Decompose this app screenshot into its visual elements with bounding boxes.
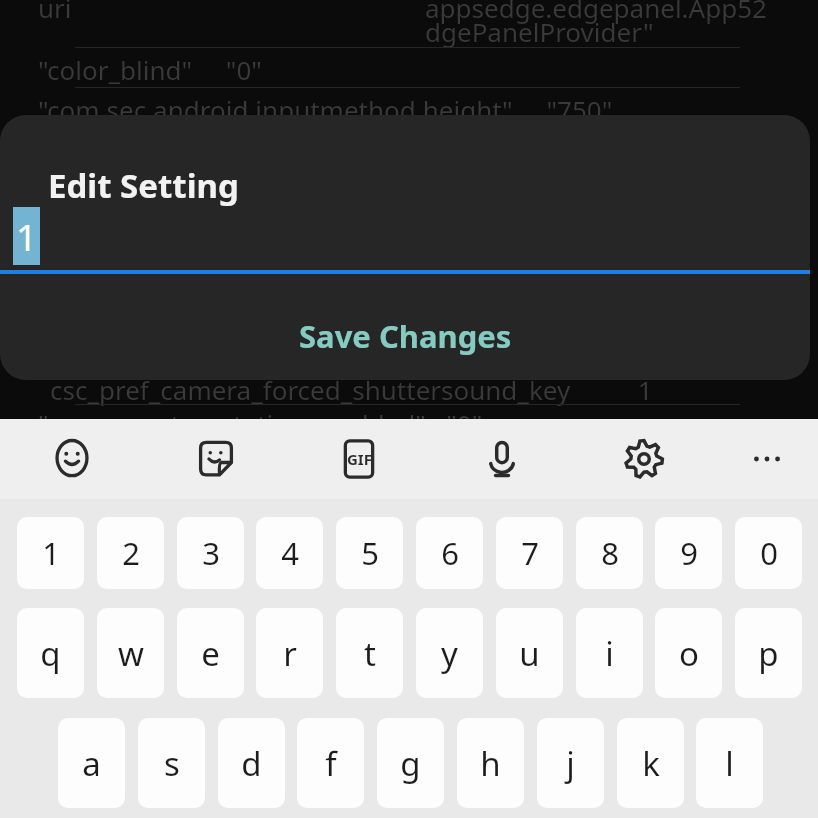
staticText: uri [38, 0, 72, 25]
staticText: appsedge.edgepanel.App52 [425, 0, 767, 25]
button[interactable]: Emoji [38, 427, 106, 491]
staticText: s [164, 741, 180, 786]
button[interactable]: Keyboard settings [610, 427, 678, 491]
staticText: h [480, 741, 501, 786]
button[interactable]: a [58, 718, 125, 808]
staticText: "color_blind" "0" [38, 52, 262, 87]
staticText: 4 [281, 532, 299, 574]
button[interactable]: e [177, 608, 244, 698]
staticText: 6 [441, 532, 459, 574]
staticText: "screen_auto_rotation_enabled" "0" [38, 406, 483, 441]
staticText: 9 [680, 532, 698, 574]
button[interactable]: p [735, 608, 802, 698]
button[interactable]: s [138, 718, 205, 808]
staticText: csc_pref_camera_forced_shuttersound_key … [50, 372, 653, 407]
staticText: GIF [347, 449, 372, 469]
staticText: k [642, 741, 660, 786]
staticText: y [441, 631, 458, 676]
button[interactable]: u [496, 608, 563, 698]
staticText: 3 [202, 532, 220, 574]
button[interactable]: 5 [336, 517, 403, 589]
button[interactable]: GIF [325, 427, 393, 491]
button[interactable]: r [256, 608, 323, 698]
staticText: d [241, 741, 262, 786]
staticText: 0 [760, 532, 778, 574]
staticText: w [118, 631, 144, 676]
staticText: p [758, 631, 779, 676]
staticText: g [400, 741, 421, 786]
staticText: 8 [601, 532, 619, 574]
staticText: e [201, 631, 220, 676]
button[interactable]: More options [733, 427, 801, 491]
button[interactable]: 6 [416, 517, 483, 589]
staticText: Save Changes [299, 315, 512, 357]
staticText: q [40, 631, 61, 676]
button[interactable]: 2 [97, 517, 164, 589]
button[interactable]: d [218, 718, 285, 808]
button[interactable]: w [97, 608, 164, 698]
staticText: i [605, 631, 614, 676]
staticText: "com.sec.android.inputmethod.height" "75… [38, 92, 613, 127]
staticText: j [566, 741, 575, 786]
button[interactable]: f [297, 718, 364, 808]
staticText: 1 [42, 532, 60, 574]
button[interactable]: i [576, 608, 643, 698]
staticText: o [679, 631, 699, 676]
button[interactable]: q [17, 608, 84, 698]
staticText: a [82, 741, 101, 786]
button[interactable]: 0 [735, 517, 802, 589]
button[interactable]: l [696, 718, 763, 808]
staticText: 7 [521, 532, 539, 574]
staticText: t [364, 631, 376, 676]
button[interactable]: Voice input [468, 427, 536, 491]
staticText: 5 [361, 532, 379, 574]
staticText: Edit Setting [48, 163, 239, 208]
button[interactable]: 4 [256, 517, 323, 589]
staticText: u [519, 631, 540, 676]
button[interactable]: Stickers [182, 427, 250, 491]
button[interactable]: k [617, 718, 684, 808]
staticText: f [325, 741, 337, 786]
button[interactable]: Save Changes [0, 300, 810, 380]
staticText: r [283, 631, 297, 676]
button[interactable]: 1 [17, 517, 84, 589]
staticText: 2 [122, 532, 140, 574]
button[interactable]: 3 [177, 517, 244, 589]
button[interactable]: g [377, 718, 444, 808]
staticText: 1 [16, 211, 38, 261]
button[interactable]: o [655, 608, 722, 698]
button[interactable]: 9 [655, 517, 722, 589]
staticText: dgePanelProvider" [425, 14, 654, 49]
button[interactable]: 8 [576, 517, 643, 589]
button[interactable]: y [416, 608, 483, 698]
button[interactable]: 7 [496, 517, 563, 589]
button[interactable]: h [457, 718, 524, 808]
button[interactable]: j [537, 718, 604, 808]
staticText: l [725, 741, 734, 786]
button[interactable]: t [336, 608, 403, 698]
